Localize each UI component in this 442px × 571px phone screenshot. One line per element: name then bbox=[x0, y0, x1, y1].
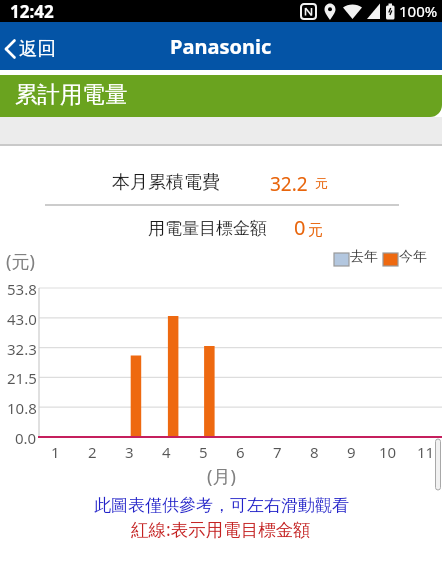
staticText: 100% bbox=[399, 1, 438, 21]
staticText: 5 bbox=[199, 442, 208, 462]
staticText: 0.0 bbox=[15, 428, 37, 448]
staticText: 本月累積電費 bbox=[112, 171, 220, 194]
staticText: 10.8 bbox=[7, 398, 37, 418]
staticText: 8 bbox=[310, 442, 319, 462]
staticText: 21.5 bbox=[7, 368, 37, 388]
staticText: 6 bbox=[236, 442, 245, 462]
staticText: 3 bbox=[125, 442, 134, 462]
staticText: 9 bbox=[347, 442, 356, 462]
staticText: 返回 bbox=[19, 37, 56, 60]
staticText: 今年 bbox=[399, 248, 427, 266]
staticText: 32.3 bbox=[7, 339, 37, 359]
staticText: 12:42 bbox=[10, 0, 54, 22]
staticText: 用電量目標金額 bbox=[148, 218, 267, 239]
staticText: 2 bbox=[88, 442, 97, 462]
staticText: 元 bbox=[308, 221, 323, 240]
staticText: 紅線:表示用電目標金額 bbox=[131, 517, 311, 541]
staticText: 4 bbox=[162, 442, 171, 462]
staticText: 7 bbox=[273, 442, 282, 462]
staticText: 元 bbox=[315, 175, 328, 191]
button[interactable]: Panasonic bbox=[170, 33, 272, 60]
staticText: 10 bbox=[379, 442, 397, 462]
staticText: 32.2 bbox=[270, 171, 308, 197]
staticText: 累計用電量 bbox=[15, 80, 128, 108]
staticText: (月) bbox=[207, 464, 236, 489]
staticText: 去年 bbox=[350, 248, 378, 266]
staticText: 0 bbox=[294, 214, 306, 241]
staticText: 53.8 bbox=[7, 279, 37, 299]
staticText: (元) bbox=[6, 249, 35, 274]
staticText: 1 bbox=[51, 442, 60, 462]
staticText: 43.0 bbox=[7, 309, 37, 329]
button[interactable]: 返回 bbox=[0, 33, 56, 60]
staticText: 11 bbox=[417, 442, 435, 462]
staticText: 此圖表僅供參考，可左右滑動觀看 bbox=[94, 495, 349, 516]
